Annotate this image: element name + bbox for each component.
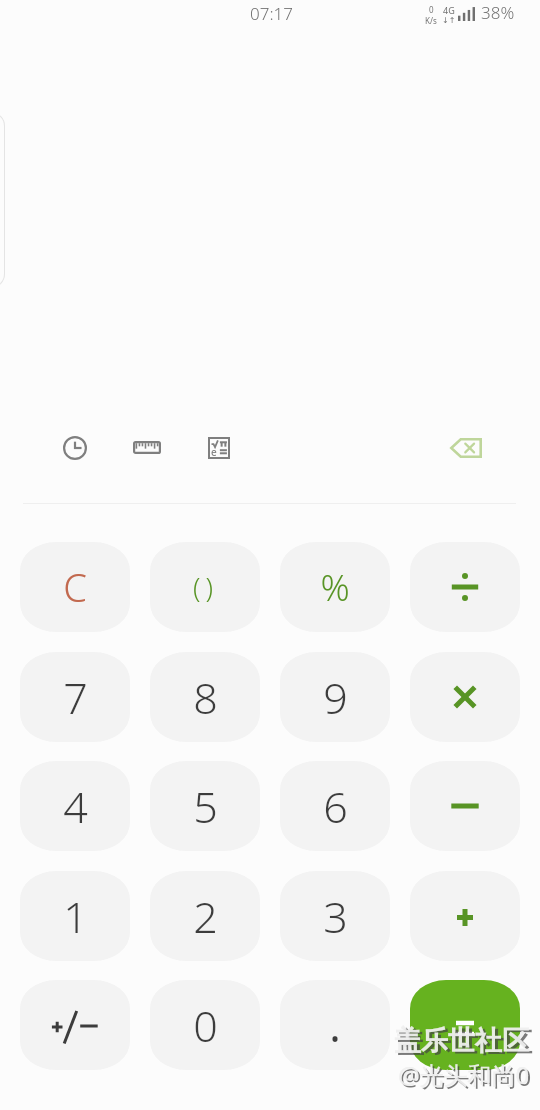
staticText: ↓↑ [442,16,456,25]
staticText: e [211,445,217,459]
staticText: 4 [63,777,88,836]
button[interactable]: Divide [410,542,520,632]
staticText: 9 [323,668,348,727]
button[interactable]: 2 [150,871,260,961]
button[interactable]: Unit converter [124,425,169,470]
button[interactable]: 1 [20,871,130,961]
staticText: 盖乐世社区 [394,1024,529,1058]
staticText: 8 [193,668,218,727]
staticText: @光头和尚0 [400,1060,532,1093]
button[interactable]: 4 [20,761,130,851]
button[interactable]: History [52,425,97,470]
button[interactable]: 5 [150,761,260,851]
staticText: 盖乐世社区 [397,1026,532,1060]
button[interactable]: Multiply [410,652,520,742]
staticText: @光头和尚0 [398,1058,530,1091]
staticText: 3 [323,887,348,946]
staticText: 0 [193,996,218,1055]
button[interactable]: 7 [20,652,130,742]
staticText: 07:17 [250,2,293,25]
staticText: () [193,569,218,606]
staticText: 5 [193,777,218,836]
staticText: 6 [323,777,348,836]
button[interactable]: . [280,980,390,1070]
button[interactable]: Plus [410,871,520,961]
button[interactable]: Plus minus sign [20,980,130,1070]
button[interactable]: () [150,542,260,632]
staticText: C [63,561,87,613]
staticText: % [320,563,350,612]
staticText: 1 [63,887,88,946]
staticText: 7 [63,668,88,727]
button[interactable]: Minus [410,761,520,851]
staticText: 38% [481,1,515,24]
button[interactable]: 6 [280,761,390,851]
button[interactable]: 9 [280,652,390,742]
staticText: 2 [193,887,218,946]
button[interactable]: C [20,542,130,632]
staticText: 0 [429,4,434,15]
button[interactable]: Equals [410,980,520,1070]
button[interactable]: Scientific mode [196,425,241,470]
button[interactable]: 3 [280,871,390,961]
staticText: K/s [425,15,437,26]
button[interactable]: Backspace [443,425,488,470]
staticText: . [329,996,341,1055]
staticText: 4G [443,4,455,16]
button[interactable]: 0 [150,980,260,1070]
button[interactable]: 8 [150,652,260,742]
button[interactable]: % [280,542,390,632]
